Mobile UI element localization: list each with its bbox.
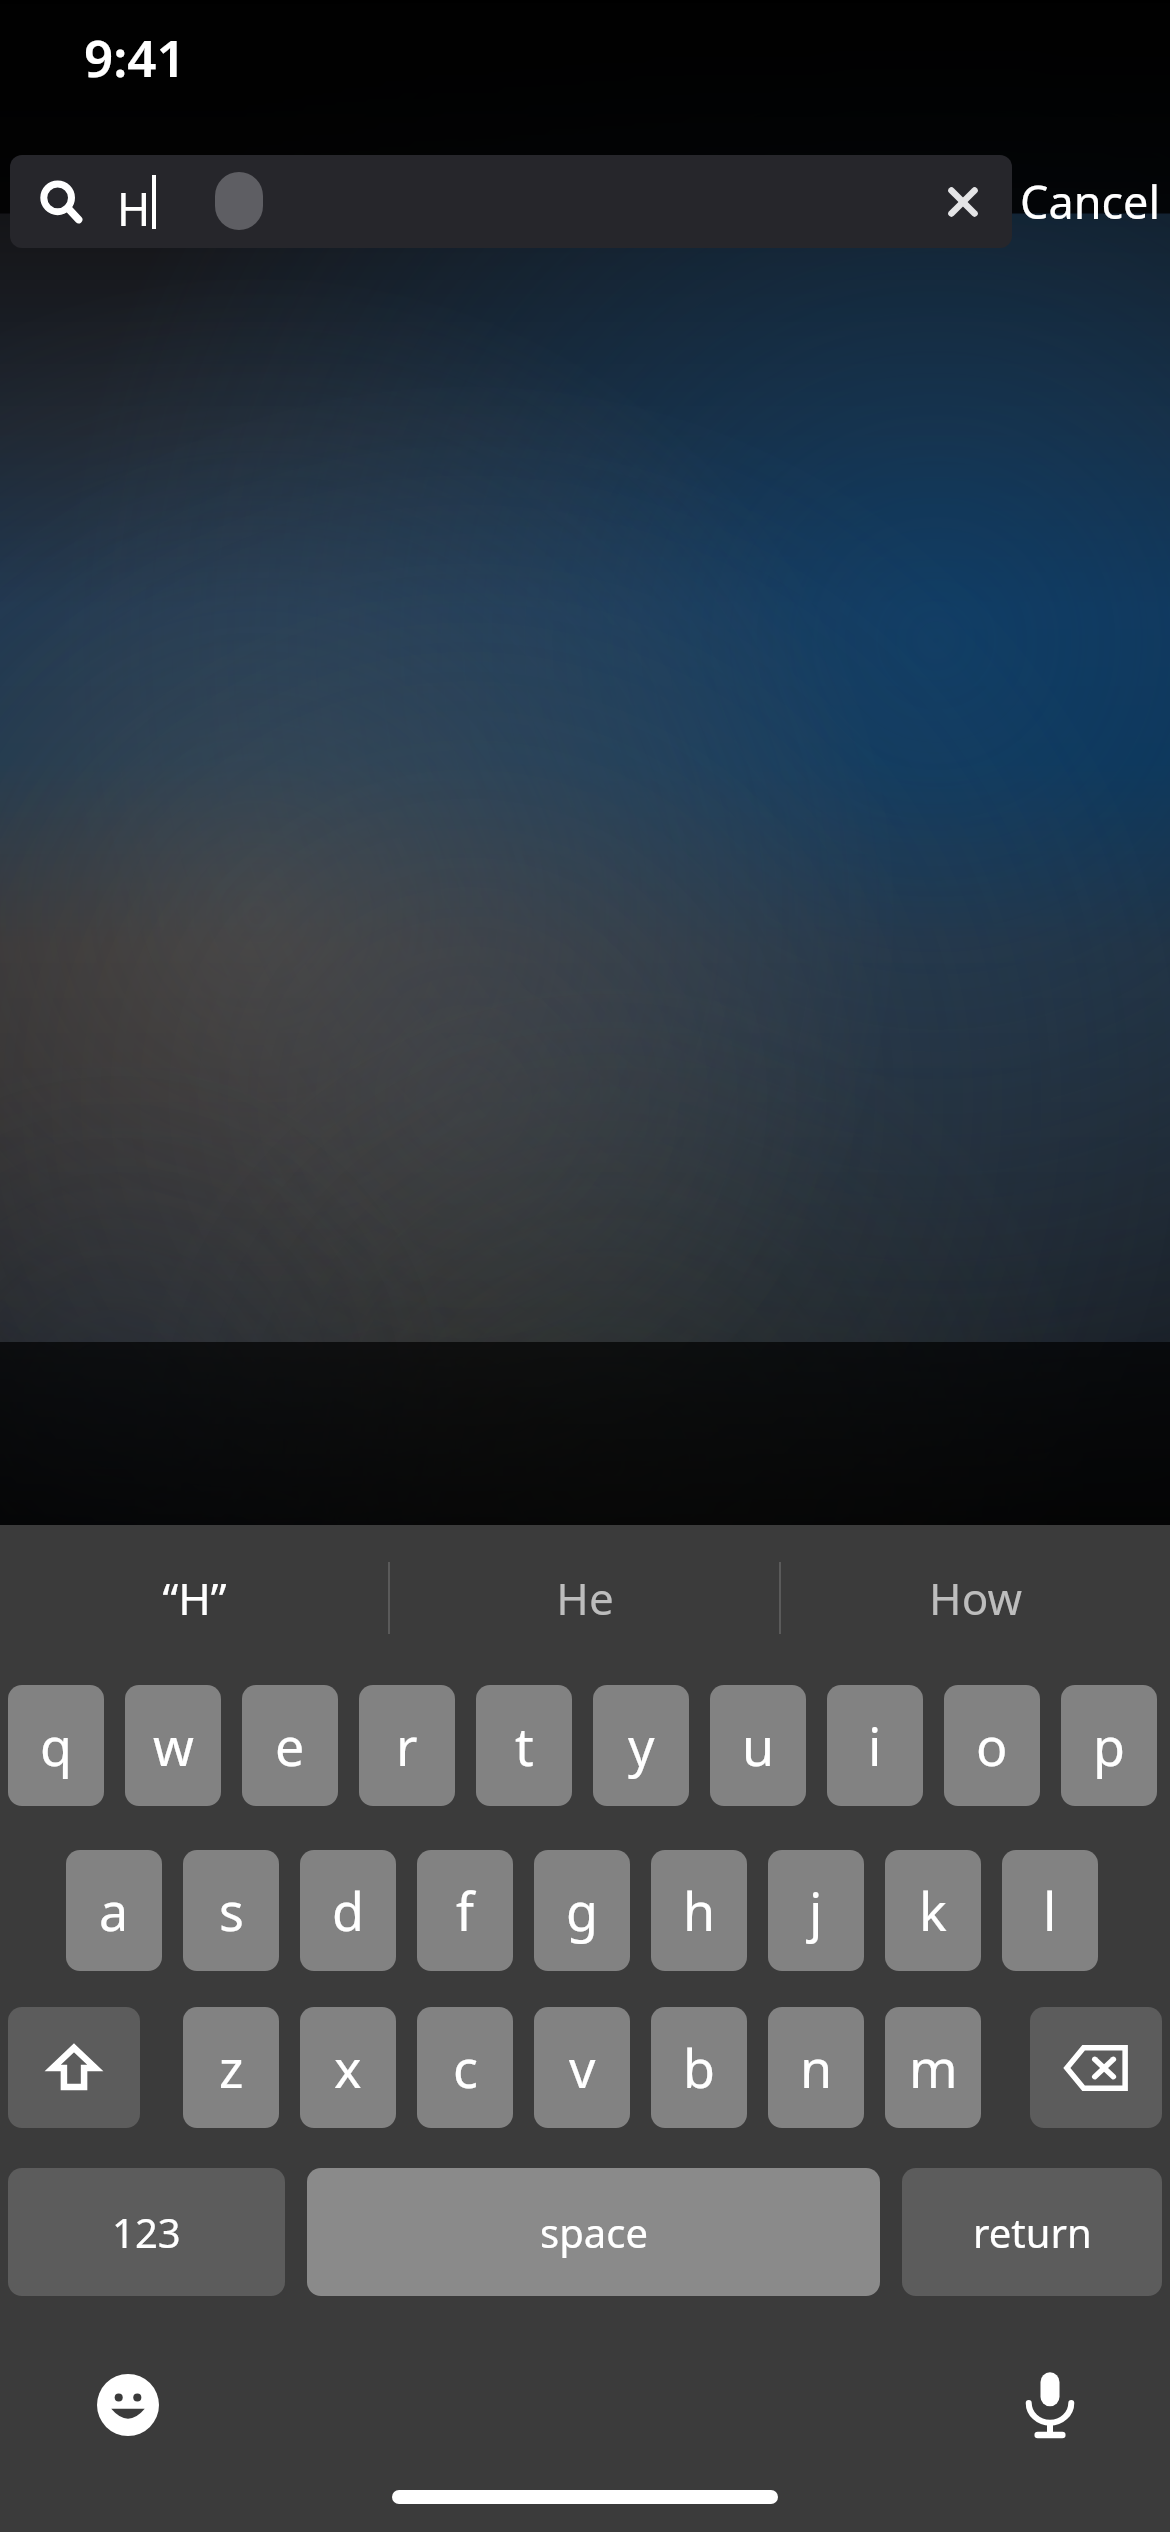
staticText: 9:41 (84, 22, 186, 91)
button[interactable]: 123 (8, 2168, 285, 2296)
staticText: 123 (112, 2205, 181, 2259)
staticText: q (40, 1710, 72, 1781)
staticText: return (973, 2205, 1092, 2259)
staticText: v (569, 2032, 596, 2103)
button[interactable]: p (1061, 1685, 1157, 1806)
button[interactable]: How (781, 1525, 1170, 1670)
button[interactable]: c (417, 2007, 513, 2128)
staticText: z (219, 2032, 244, 2103)
button[interactable]: j (768, 1850, 864, 1971)
staticText: d (332, 1875, 364, 1946)
button[interactable]: v (534, 2007, 630, 2128)
button[interactable]: w (125, 1685, 221, 1806)
button[interactable]: y (593, 1685, 689, 1806)
staticText: g (566, 1875, 598, 1946)
staticText: Cancel (1020, 171, 1161, 232)
staticText: i (868, 1710, 882, 1781)
staticText: m (909, 2032, 958, 2103)
button[interactable]: g (534, 1850, 630, 1971)
button[interactable]: He (390, 1525, 779, 1670)
button[interactable]: f (417, 1850, 513, 1971)
staticText: a (99, 1875, 129, 1946)
button[interactable]: Search (10, 155, 1012, 248)
button[interactable]: b (651, 2007, 747, 2128)
button[interactable]: s (183, 1850, 279, 1971)
button[interactable]: o (944, 1685, 1040, 1806)
staticText: He (556, 1568, 614, 1628)
button[interactable]: i (827, 1685, 923, 1806)
staticText: w (153, 1710, 194, 1781)
button[interactable]: return (902, 2168, 1162, 2296)
staticText: e (275, 1710, 305, 1781)
button[interactable]: n (768, 2007, 864, 2128)
staticText: o (976, 1710, 1008, 1781)
button[interactable]: Emoji keyboard (78, 2355, 178, 2455)
staticText: u (742, 1710, 775, 1781)
button[interactable]: u (710, 1685, 806, 1806)
staticText: s (219, 1875, 244, 1946)
button[interactable]: z (183, 2007, 279, 2128)
button[interactable]: space (307, 2168, 880, 2296)
button[interactable]: q (8, 1685, 104, 1806)
staticText: c (453, 2032, 478, 2103)
staticText: h (683, 1875, 716, 1946)
staticText: n (800, 2032, 833, 2103)
button[interactable]: e (242, 1685, 338, 1806)
button[interactable]: Shift (8, 2007, 140, 2128)
staticText: f (456, 1875, 474, 1946)
other: Search (40, 181, 82, 223)
button[interactable]: t (476, 1685, 572, 1806)
staticText: j (809, 1875, 823, 1946)
staticText: How (929, 1568, 1022, 1628)
button[interactable]: h (651, 1850, 747, 1971)
staticText: r (396, 1710, 418, 1781)
button[interactable]: Clear text (930, 169, 996, 235)
staticText: t (515, 1710, 534, 1781)
staticText: l (1043, 1875, 1057, 1946)
button[interactable]: Backspace (1030, 2007, 1162, 2128)
button[interactable]: Cancel (1020, 155, 1170, 248)
staticText: space (540, 2205, 648, 2259)
staticText: k (919, 1875, 947, 1946)
button[interactable]: d (300, 1850, 396, 1971)
staticText: b (683, 2032, 715, 2103)
button[interactable]: a (66, 1850, 162, 1971)
button[interactable]: r (359, 1685, 455, 1806)
button[interactable]: x (300, 2007, 396, 2128)
button[interactable]: Dictation (1000, 2355, 1100, 2455)
button[interactable]: m (885, 2007, 981, 2128)
staticText: x (334, 2032, 362, 2103)
button[interactable]: “H” (0, 1525, 388, 1670)
button[interactable]: l (1002, 1850, 1098, 1971)
staticText: p (1093, 1710, 1125, 1781)
staticText: “H” (162, 1568, 227, 1628)
button[interactable]: k (885, 1850, 981, 1971)
staticText: y (628, 1710, 655, 1781)
staticText: H (117, 178, 151, 239)
